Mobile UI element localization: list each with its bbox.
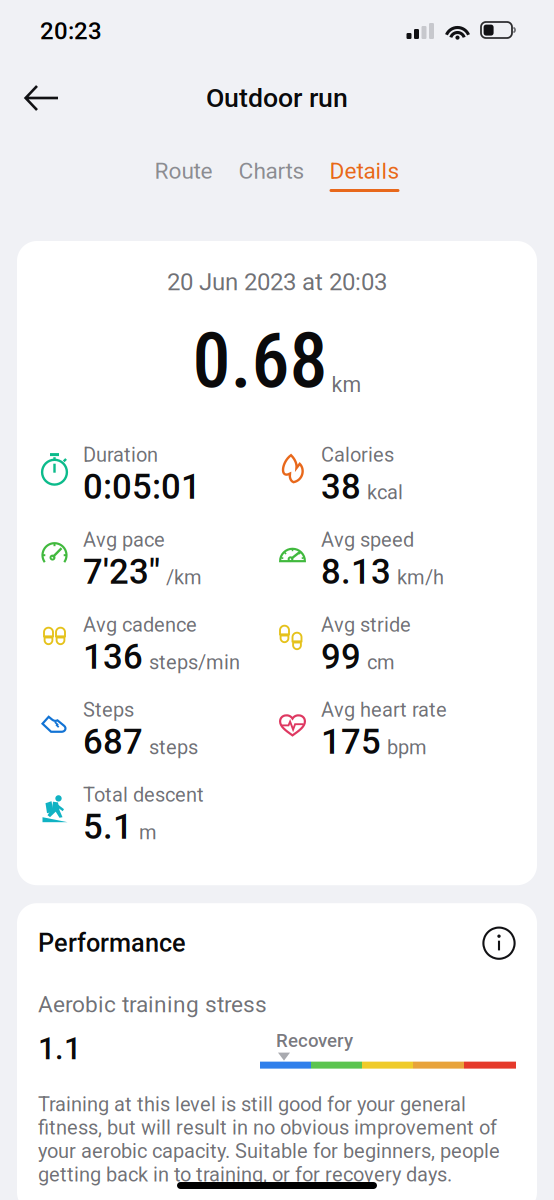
staticText: Route: [154, 158, 212, 184]
staticText: 8.13: [321, 552, 391, 592]
staticText: m: [139, 821, 157, 844]
staticText: 5.1: [83, 807, 133, 847]
staticText: 7'23": [83, 552, 160, 592]
button[interactable]: Information: [482, 926, 516, 960]
staticText: Avg stride: [321, 613, 411, 637]
staticText: 20:23: [40, 17, 102, 45]
staticText: Avg pace: [83, 528, 165, 552]
staticText: cm: [367, 651, 395, 674]
staticText: Training at this level is still good for…: [38, 1093, 500, 1186]
staticText: Total descent: [83, 783, 204, 807]
staticText: kcal: [367, 481, 403, 504]
button[interactable]: Charts: [239, 160, 303, 192]
staticText: steps: [149, 736, 198, 759]
staticText: 175: [321, 722, 381, 762]
staticText: steps/min: [149, 651, 240, 674]
staticText: 687: [83, 722, 143, 762]
staticText: Charts: [238, 158, 304, 184]
button[interactable]: Details: [329, 160, 399, 192]
staticText: 20 Jun 2023 at 20:03: [167, 268, 387, 296]
staticText: Avg heart rate: [321, 698, 447, 722]
staticText: Calories: [321, 443, 394, 467]
staticText: 38: [321, 467, 361, 507]
staticText: Details: [329, 158, 399, 184]
staticText: km/h: [397, 566, 444, 589]
staticText: Avg speed: [321, 528, 414, 552]
button[interactable]: Route: [154, 160, 212, 192]
staticText: Steps: [83, 698, 134, 722]
staticText: 0:05:01: [83, 467, 201, 507]
staticText: 99: [321, 637, 361, 677]
staticText: 136: [83, 637, 143, 677]
staticText: km: [331, 372, 361, 397]
staticText: 0.68: [192, 316, 327, 405]
staticText: Duration: [83, 443, 158, 467]
staticText: bpm: [387, 736, 427, 759]
staticText: Performance: [38, 928, 186, 958]
staticText: Avg cadence: [83, 613, 197, 637]
staticText: 1.1: [38, 1031, 81, 1067]
button[interactable]: Back: [14, 71, 70, 125]
staticText: Outdoor run: [206, 82, 348, 114]
staticText: /km: [166, 566, 202, 589]
staticText: Recovery: [276, 1030, 353, 1052]
staticText: Aerobic training stress: [38, 991, 267, 1018]
